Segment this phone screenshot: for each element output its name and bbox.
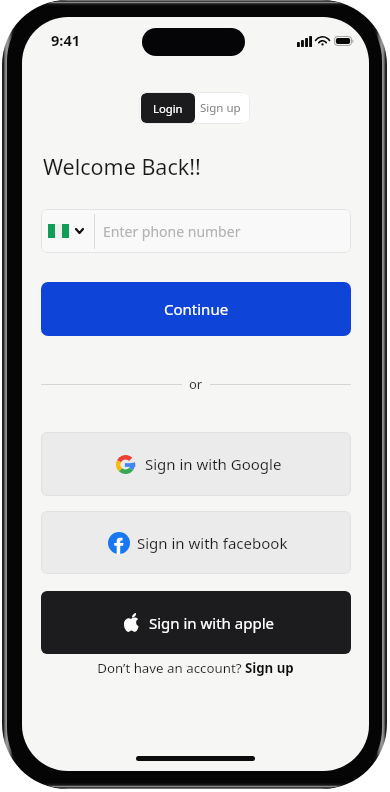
button[interactable]: Sign in with Google	[41, 432, 351, 496]
staticText: Welcome Back!!	[43, 152, 201, 181]
button[interactable]: Login	[139, 92, 197, 124]
staticText: Continue	[164, 299, 229, 319]
button[interactable]: Continue	[41, 282, 351, 336]
staticText: Sign up	[200, 100, 241, 116]
button[interactable]: Don’t have an account? Sign up	[97, 659, 294, 677]
staticText: 9:41	[51, 30, 81, 50]
button[interactable]: Sign up	[194, 92, 247, 124]
staticText: Sign in with Google	[145, 454, 282, 474]
button[interactable]: Sign in with facebook	[41, 511, 351, 574]
staticText: Enter phone number	[103, 222, 241, 241]
button[interactable]: Sign in with apple	[41, 591, 351, 654]
staticText: Don’t have an account? Sign up	[97, 659, 294, 677]
button[interactable]: Select country code	[41, 209, 94, 253]
staticText: Login	[153, 101, 183, 116]
staticText: Sign in with facebook	[137, 533, 288, 553]
staticText: Sign in with apple	[149, 613, 274, 633]
staticText: or	[189, 375, 203, 393]
